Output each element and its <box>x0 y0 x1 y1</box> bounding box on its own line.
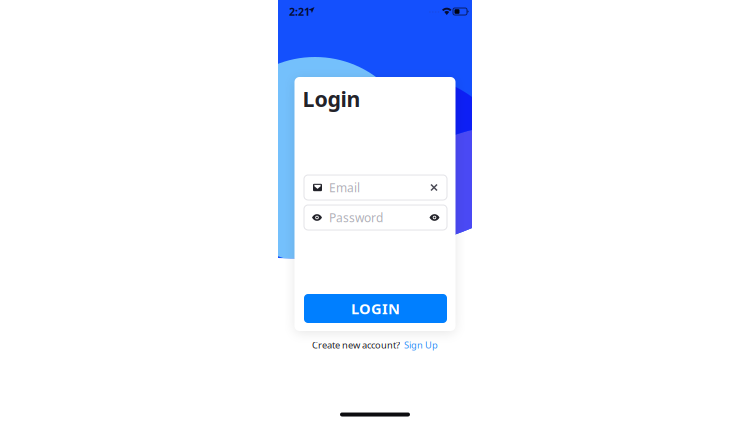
staticText: Password <box>329 209 383 225</box>
staticText: 2:21 <box>289 4 310 19</box>
staticText: Login <box>302 84 360 113</box>
staticText: Create new account? <box>312 339 400 351</box>
staticText: Sign Up <box>404 339 438 351</box>
staticText: LOGIN <box>351 299 400 318</box>
staticText: Email <box>329 179 360 195</box>
button[interactable]: Email <box>304 175 447 200</box>
button[interactable]: LOGIN <box>304 294 447 323</box>
button[interactable]: Sign Up <box>400 339 438 351</box>
button[interactable]: Password <box>304 205 447 230</box>
